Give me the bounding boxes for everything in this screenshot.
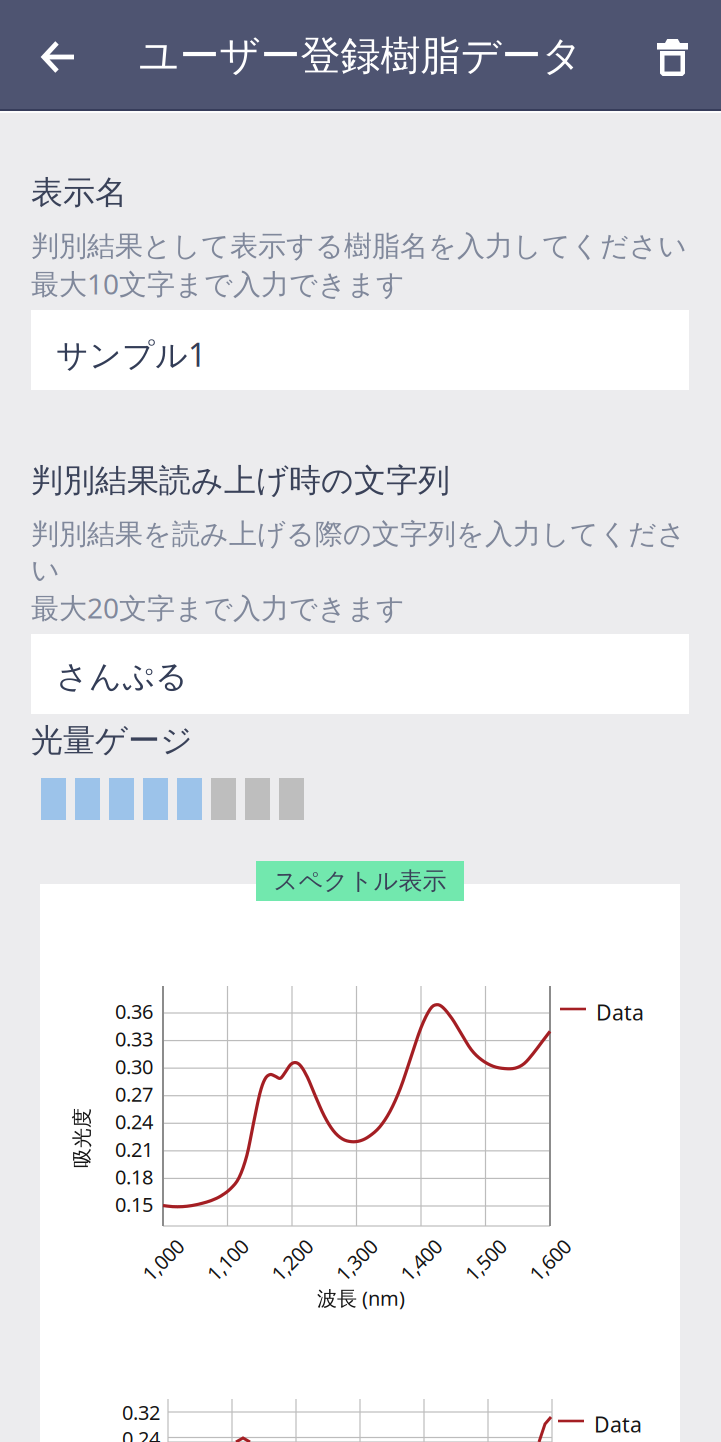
staticText: Data	[594, 1410, 642, 1438]
staticText: 0.33	[115, 1026, 153, 1052]
staticText: 吸光度	[52, 1126, 112, 1150]
staticText: 最大20文字まで入力できます	[31, 589, 405, 626]
button[interactable]: 戻る	[38, 38, 80, 75]
staticText: 1,100	[203, 1247, 252, 1273]
staticText: 波長 (nm)	[317, 1285, 405, 1311]
staticText: 判別結果として表示する樹脂名を入力してください	[31, 229, 687, 263]
staticText: 最大10文字まで入力できます	[31, 265, 405, 302]
staticText: 0.18	[115, 1163, 153, 1190]
staticText: 1,200	[267, 1247, 316, 1273]
staticText: スペクトル表示	[273, 866, 446, 896]
staticText: 0.15	[115, 1191, 153, 1218]
staticText: 0.24	[122, 1425, 160, 1442]
staticText: Data	[596, 998, 644, 1026]
staticText: 0.24	[115, 1108, 153, 1135]
staticText: 判別結果を読み上げる際の文字列を入力してくださ	[31, 517, 686, 551]
button[interactable]: スペクトル表示	[256, 861, 464, 901]
staticText: 表示名	[31, 173, 127, 212]
staticText: 0.21	[115, 1136, 153, 1162]
staticText: ユーザー登録樹脂データ	[138, 31, 582, 80]
staticText: い	[31, 553, 60, 587]
staticText: 0.36	[115, 998, 153, 1025]
staticText: 1,000	[138, 1247, 187, 1273]
staticText: 1,300	[332, 1247, 381, 1273]
staticText: 0.27	[115, 1081, 153, 1107]
button[interactable]: 削除	[657, 39, 688, 77]
staticText: 判別結果読み上げ時の文字列	[31, 461, 450, 500]
staticText: 1,400	[396, 1247, 445, 1273]
staticText: 1,600	[525, 1247, 574, 1273]
staticText: 0.32	[122, 1399, 160, 1426]
staticText: 光量ゲージ	[31, 721, 193, 760]
staticText: サンプル1	[56, 333, 206, 375]
staticText: さんぷる	[56, 657, 188, 696]
staticText: 1,500	[461, 1247, 510, 1273]
staticText: 0.30	[115, 1053, 153, 1080]
